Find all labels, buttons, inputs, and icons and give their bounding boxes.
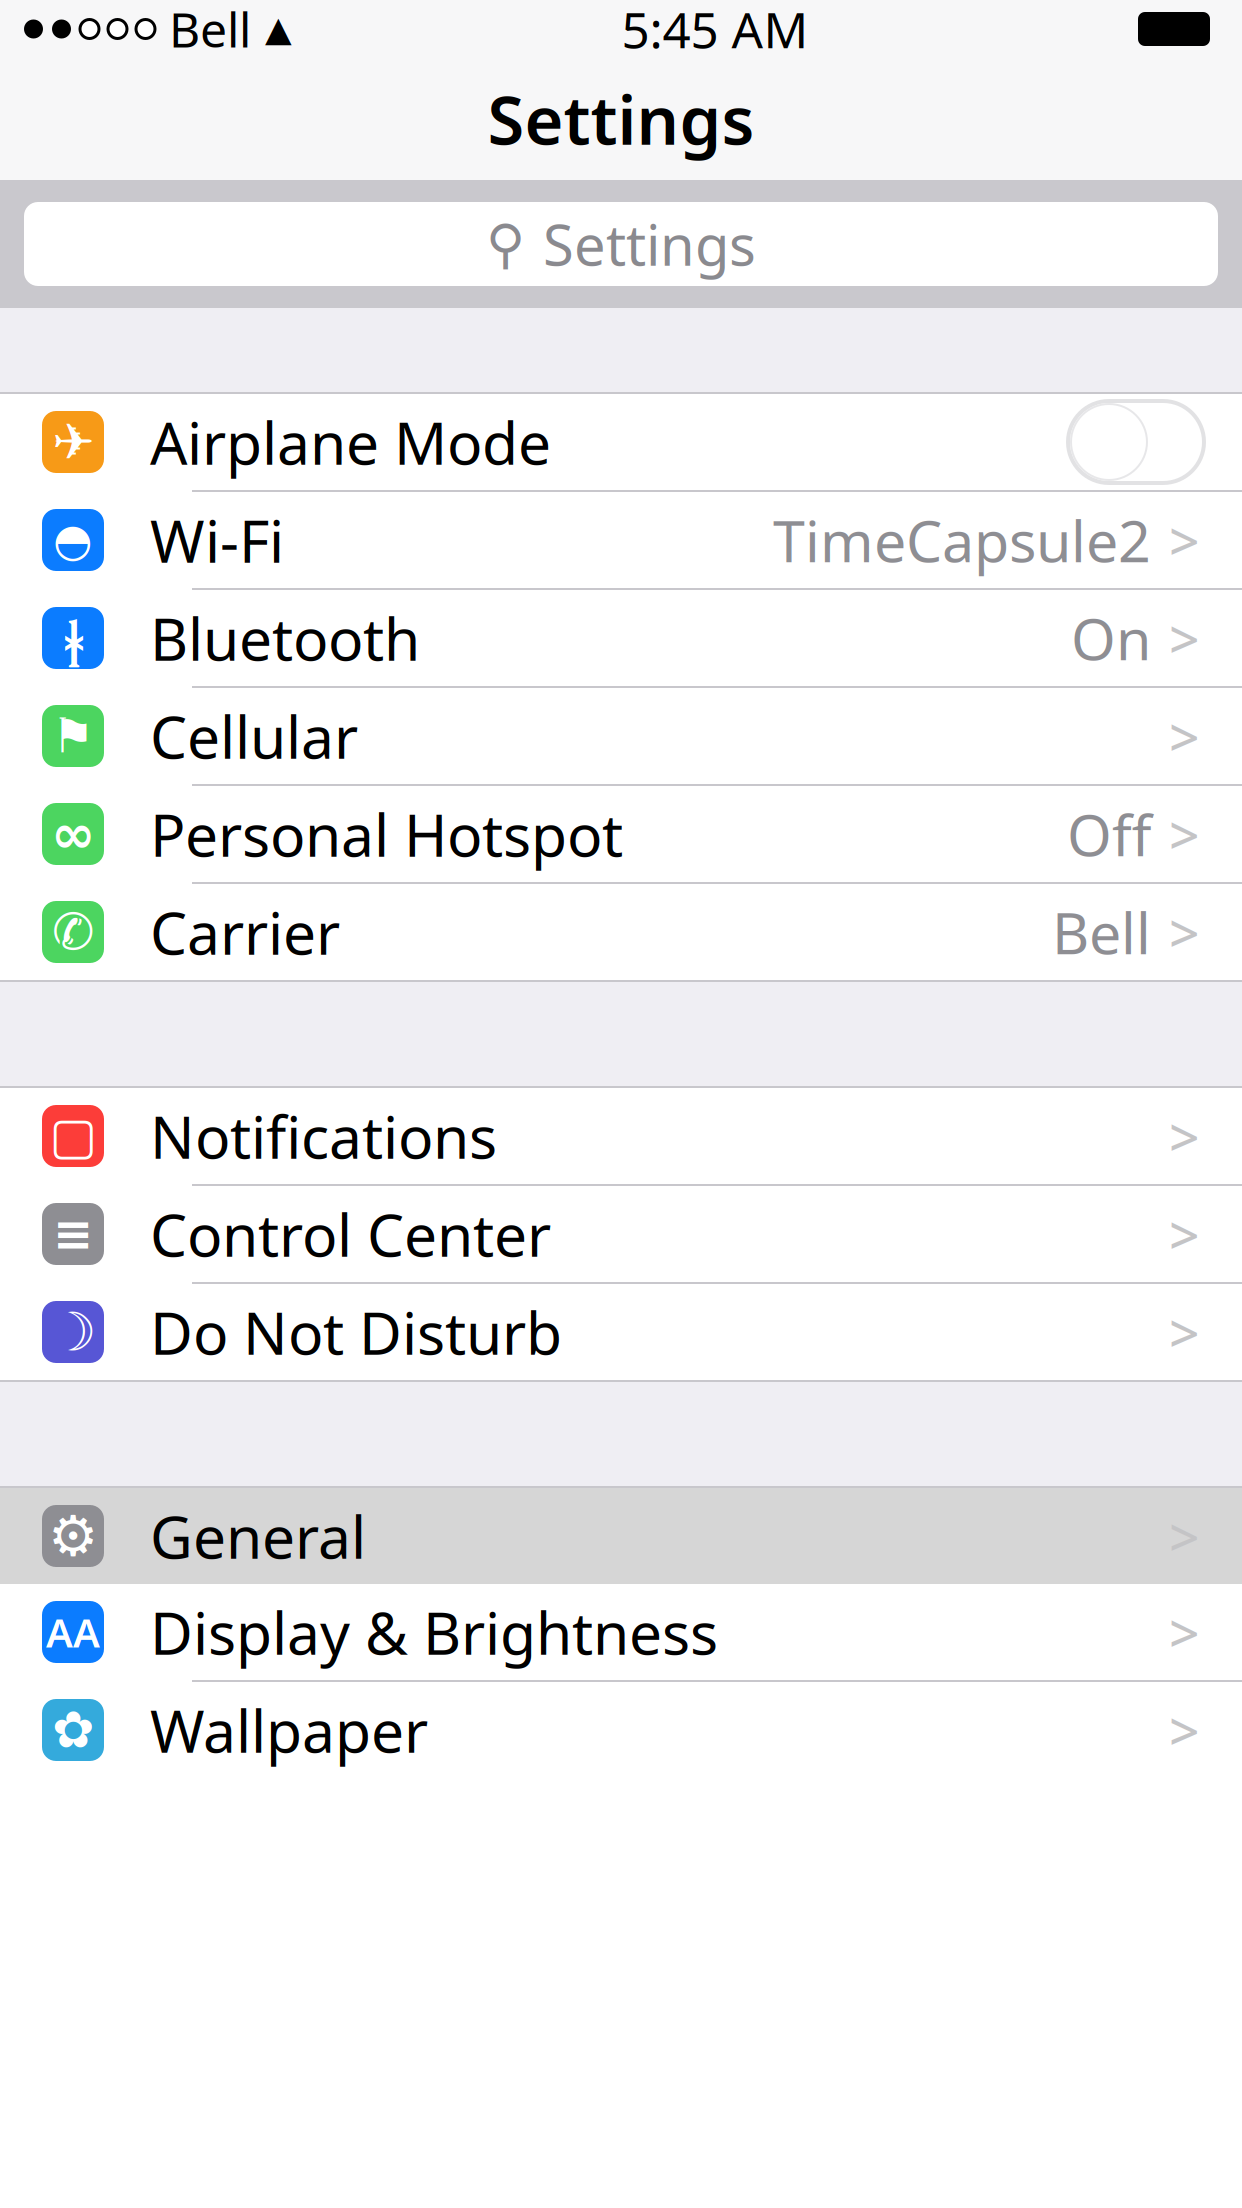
staticText: ≡ <box>53 1207 93 1261</box>
staticText: Wi-Fi <box>150 501 284 579</box>
staticText: Do Not Disturb <box>150 1293 562 1371</box>
staticText: AA <box>46 1605 100 1658</box>
staticText: > <box>1169 1695 1200 1765</box>
staticText: Settings <box>487 75 754 163</box>
staticText: TimeCapsule2 <box>773 502 1151 578</box>
staticText: > <box>1169 1297 1200 1367</box>
staticText: ᛡ <box>63 606 82 670</box>
staticText: Bluetooth <box>150 599 420 677</box>
staticText: Wallpaper <box>150 1691 428 1769</box>
staticText: > <box>1169 505 1200 575</box>
staticText: ◓ <box>53 514 93 566</box>
staticText: ✿ <box>52 1701 94 1759</box>
button[interactable]: ⚑ <box>0 688 1242 784</box>
button[interactable]: ✿ <box>0 1682 1242 1778</box>
button[interactable]: ☽ <box>0 1284 1242 1380</box>
button[interactable]: ᛡ <box>0 590 1242 686</box>
staticText: ☽ <box>49 1302 97 1362</box>
button[interactable]: ▢ <box>0 1088 1242 1184</box>
staticText: > <box>1169 1597 1200 1667</box>
staticText: ✈ <box>52 413 94 471</box>
staticText: General <box>150 1497 366 1575</box>
staticText: Cellular <box>150 697 358 775</box>
staticText: ▲ <box>265 9 292 49</box>
staticText: ✆ <box>52 903 94 961</box>
staticText: Notifications <box>150 1097 497 1175</box>
staticText: > <box>1169 799 1200 869</box>
staticText: ∞ <box>51 804 95 864</box>
staticText: Bell <box>1052 894 1151 970</box>
button[interactable]: ✈ <box>0 394 1242 490</box>
staticText: Settings <box>543 207 756 281</box>
staticText: Personal Hotspot <box>150 795 623 873</box>
staticText: > <box>1169 701 1200 771</box>
staticText: ⚲ <box>486 214 525 274</box>
button[interactable]: ⚙ <box>0 1488 1242 1584</box>
button[interactable]: ≡ <box>0 1186 1242 1282</box>
staticText: 5:45 AM <box>621 0 808 62</box>
button[interactable]: ✆ <box>0 884 1242 980</box>
staticText: Bell <box>169 0 251 61</box>
staticText: > <box>1169 1101 1200 1171</box>
staticText: > <box>1169 1501 1200 1571</box>
staticText: ⚑ <box>51 709 94 763</box>
staticText: Airplane Mode <box>150 403 551 481</box>
staticText: ▢ <box>49 1107 97 1165</box>
staticText: Display & Brightness <box>150 1593 718 1671</box>
button[interactable]: ⚲ <box>0 180 1242 308</box>
staticText: Carrier <box>150 893 340 971</box>
staticText: > <box>1169 897 1200 967</box>
staticText: ⚙ <box>48 1504 98 1568</box>
staticText: Control Center <box>150 1195 551 1273</box>
staticText: On <box>1071 600 1151 676</box>
button[interactable]: AA <box>0 1584 1242 1680</box>
button[interactable]: ◓ <box>0 492 1242 588</box>
staticText: > <box>1169 1199 1200 1269</box>
staticText: > <box>1169 603 1200 673</box>
staticText: Off <box>1067 796 1151 872</box>
button[interactable]: ∞ <box>0 786 1242 882</box>
